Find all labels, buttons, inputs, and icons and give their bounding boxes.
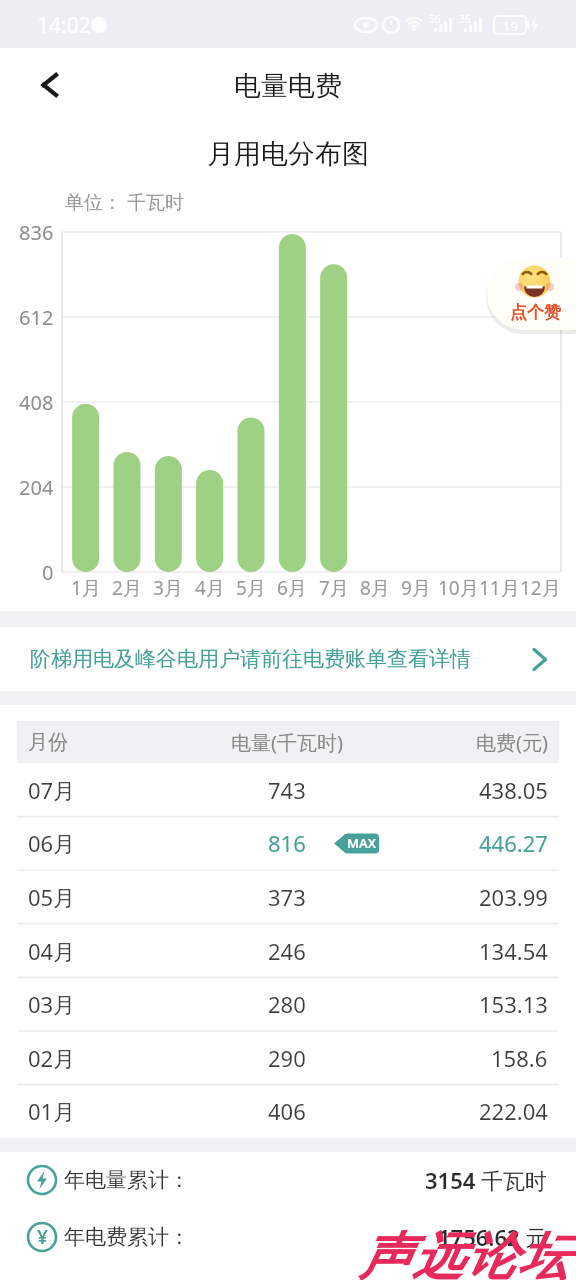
staticText: 单位： 千瓦时 [65, 189, 184, 215]
staticText: 290 [268, 1043, 306, 1073]
staticText: 816 [268, 828, 306, 858]
staticText: 612 [19, 304, 54, 331]
staticText: 836 [19, 219, 54, 246]
staticText: 204 [19, 474, 54, 501]
button[interactable] [487, 258, 576, 330]
staticText: 年电量累计： [64, 1167, 190, 1193]
button[interactable] [28, 66, 70, 106]
staticText: 408 [19, 389, 54, 416]
staticText: 06月 [28, 828, 76, 858]
staticText: 2月 [112, 575, 142, 601]
staticText: 4月 [195, 575, 225, 601]
staticText: ¥ [37, 1224, 48, 1250]
staticText: 0 [42, 559, 54, 586]
staticText: 01月 [28, 1096, 76, 1126]
staticText: 电量(千瓦时) [231, 729, 343, 756]
staticText: 月份 [28, 730, 68, 755]
staticText: 7月 [319, 575, 349, 601]
staticText: 158.6 [491, 1043, 548, 1073]
staticText: MAX [347, 834, 377, 852]
staticText: 02月 [28, 1043, 76, 1073]
button[interactable] [0, 1032, 576, 1084]
staticText: 点个赞 [510, 302, 561, 323]
staticText: 07月 [28, 775, 76, 805]
button[interactable] [0, 871, 576, 923]
staticText: 阶梯用电及峰谷电用户请前往电费账单查看详情 [30, 646, 471, 672]
staticText: 153.13 [479, 989, 548, 1019]
button[interactable] [0, 817, 576, 869]
staticText: 222.04 [479, 1096, 548, 1126]
staticText: 电费(元) [476, 729, 548, 756]
staticText: 声远论坛 [358, 1225, 570, 1280]
staticText: 10月 [438, 575, 479, 601]
staticText: 246 [268, 936, 306, 966]
button[interactable] [0, 978, 576, 1030]
staticText: 9月 [401, 575, 431, 601]
staticText: 280 [268, 989, 306, 1019]
staticText: 1756.62 元 [438, 1222, 548, 1252]
button[interactable]: 阶梯用电及峰谷电用户请前往电费账单查看详情 [0, 627, 576, 691]
staticText: 203.99 [479, 882, 548, 912]
staticText: 3月 [153, 575, 183, 601]
staticText: 月用电分布图 [207, 137, 369, 171]
staticText: 6月 [277, 575, 307, 601]
staticText: 36 [459, 12, 471, 24]
staticText: 406 [268, 1096, 306, 1126]
staticText: 1月 [71, 575, 101, 601]
staticText: 03月 [28, 989, 76, 1019]
staticText: 5月 [236, 575, 266, 601]
staticText: 年电费累计： [64, 1224, 190, 1250]
staticText: 05月 [28, 882, 76, 912]
staticText: 3154 千瓦时 [425, 1165, 548, 1195]
staticText: 743 [268, 775, 306, 805]
staticText: 电量电费 [234, 69, 342, 103]
staticText: 134.54 [479, 936, 548, 966]
staticText: 446.27 [479, 828, 548, 858]
staticText: 373 [268, 882, 306, 912]
staticText: 04月 [28, 936, 76, 966]
staticText: 11月 [479, 575, 520, 601]
staticText: 12月 [520, 575, 561, 601]
button[interactable] [0, 1085, 576, 1137]
staticText: 438.05 [479, 775, 548, 805]
staticText: 56 [429, 12, 441, 24]
staticText: 19 [503, 17, 518, 33]
button[interactable] [0, 925, 576, 977]
staticText: 8月 [360, 575, 390, 601]
staticText: 14:02 [37, 11, 91, 40]
button[interactable] [0, 764, 576, 816]
